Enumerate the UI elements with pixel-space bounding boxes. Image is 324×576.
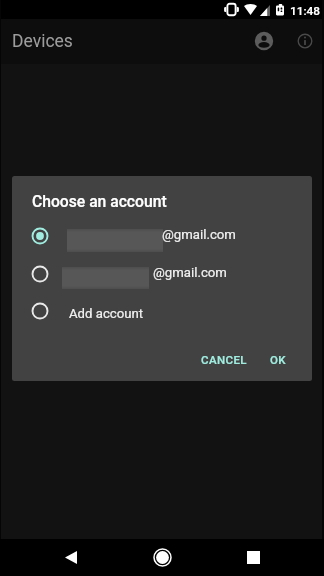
button[interactable]: Recents [229, 539, 277, 576]
button[interactable]: Info [285, 21, 324, 61]
button[interactable]: @gmail.com [12, 217, 312, 255]
button[interactable]: CANCEL [193, 343, 255, 375]
button[interactable]: Back [47, 539, 95, 576]
staticText: @gmail.com [153, 265, 227, 280]
button[interactable]: Account [244, 21, 284, 61]
staticText: @gmail.com [162, 227, 236, 242]
button[interactable]: Home [138, 539, 186, 576]
staticText: 11:48 [290, 4, 320, 18]
staticText: Devices [12, 31, 73, 52]
button[interactable]: @gmail.com [12, 255, 312, 293]
button[interactable]: Add account [12, 292, 312, 330]
staticText: CANCEL [201, 353, 247, 366]
staticText: OK [270, 353, 286, 366]
button[interactable]: OK [262, 343, 294, 375]
staticText: Choose an account [32, 192, 167, 210]
staticText: Add account [69, 306, 144, 321]
